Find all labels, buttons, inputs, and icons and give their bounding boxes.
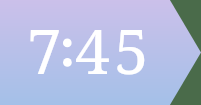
staticText: 4: [75, 8, 110, 92]
staticText: 5: [114, 8, 149, 92]
staticText: 7: [27, 8, 62, 92]
